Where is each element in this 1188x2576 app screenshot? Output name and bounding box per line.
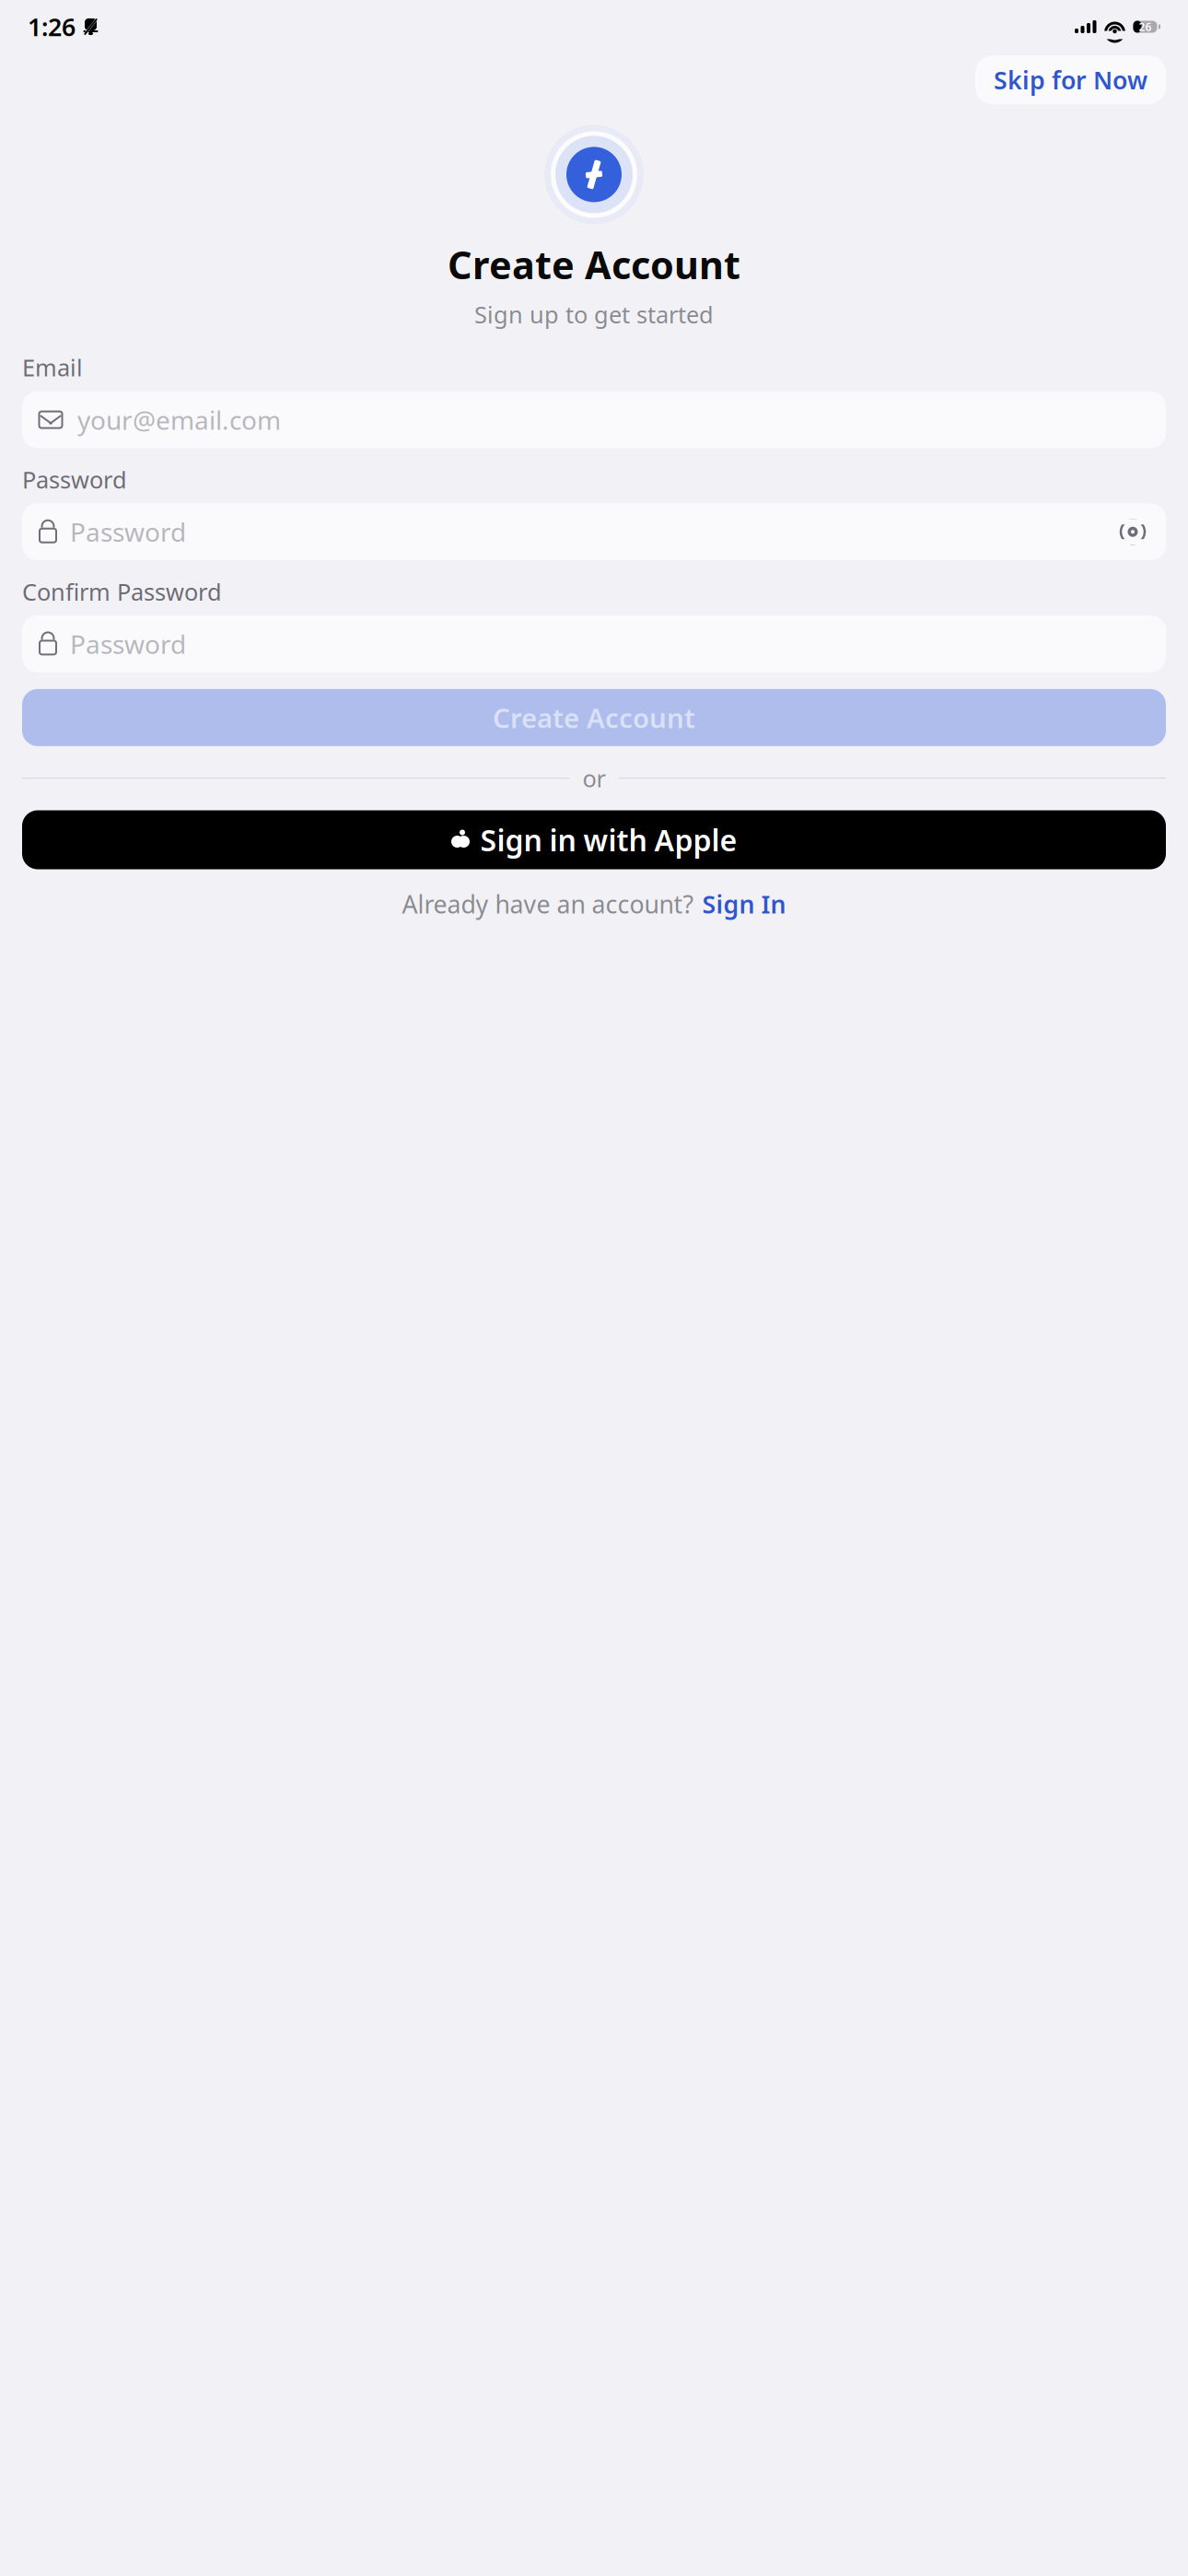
staticText: Password: [70, 515, 186, 549]
button[interactable]: Password: [22, 503, 1166, 560]
staticText: your@email.com: [77, 403, 281, 437]
button[interactable]: Skip for Now: [975, 55, 1166, 104]
button[interactable]: Password: [22, 615, 1166, 672]
staticText: or: [582, 763, 606, 794]
staticText: Create Account: [448, 239, 740, 290]
staticText: Sign up to get started: [474, 299, 714, 330]
button[interactable]: your@email.com: [22, 391, 1166, 448]
staticText: Password: [22, 464, 127, 495]
staticText: Password: [70, 627, 186, 661]
staticText: Email: [22, 352, 83, 383]
button[interactable]: Show password: [1116, 519, 1149, 545]
staticText: Skip for Now: [994, 64, 1147, 96]
staticText: Sign In: [702, 888, 786, 920]
button[interactable]: Sign In: [702, 888, 786, 920]
button[interactable]: Sign in with Apple: [22, 810, 1166, 869]
button[interactable]: Create Account: [22, 689, 1166, 746]
staticText: Sign in with Apple: [480, 820, 737, 859]
staticText: Create Account: [493, 700, 695, 736]
staticText: Confirm Password: [22, 576, 222, 607]
staticText: Already have an account?: [402, 888, 694, 920]
staticText: 26: [1139, 19, 1152, 34]
staticText: 1:26: [28, 10, 76, 43]
